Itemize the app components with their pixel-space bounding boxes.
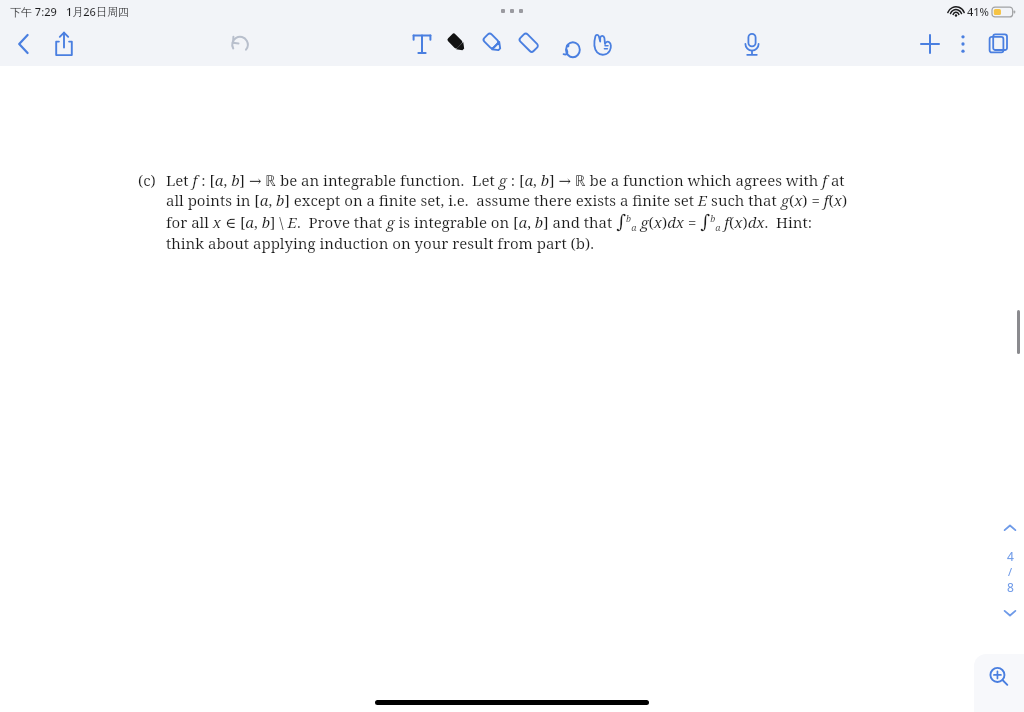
staticText: / bbox=[1008, 564, 1013, 579]
button[interactable]: Previous page bbox=[997, 516, 1023, 540]
button[interactable]: Text tool bbox=[404, 22, 440, 66]
staticText: for all x ∈ [a, b] \ E. Prove that g is … bbox=[166, 210, 813, 233]
button[interactable]: Eraser bbox=[512, 22, 548, 66]
button[interactable]: Voice recording bbox=[734, 22, 770, 66]
button[interactable]: Zoom in bbox=[974, 654, 1024, 712]
button[interactable]: Next page bbox=[997, 601, 1023, 625]
staticText: 1月26日周四 bbox=[66, 4, 129, 19]
button[interactable]: Pages bbox=[978, 22, 1018, 66]
staticText: think about applying induction on your r… bbox=[166, 233, 594, 253]
staticText: 41% bbox=[967, 4, 989, 19]
staticText: 下午 7:29 bbox=[10, 4, 57, 19]
button[interactable]: Back bbox=[6, 22, 42, 66]
button[interactable]: Pen bbox=[440, 22, 476, 66]
button[interactable]: Highlighter bbox=[476, 22, 512, 66]
staticText: 8 bbox=[1007, 579, 1014, 595]
staticText: Let f : [a, b] → ℝ be an integrable func… bbox=[166, 170, 845, 190]
button[interactable]: Undo bbox=[222, 22, 258, 66]
button[interactable]: Hand tool bbox=[584, 22, 620, 66]
button[interactable]: 4 bbox=[1007, 548, 1014, 595]
staticText: 4 bbox=[1007, 548, 1014, 564]
staticText: (c) bbox=[138, 170, 156, 190]
button[interactable]: Share bbox=[46, 22, 82, 66]
button[interactable]: Add bbox=[912, 22, 948, 66]
staticText: all points in [a, b] except on a finite … bbox=[166, 190, 848, 210]
button[interactable]: Lasso select bbox=[548, 22, 584, 66]
button[interactable]: More options bbox=[948, 22, 978, 66]
